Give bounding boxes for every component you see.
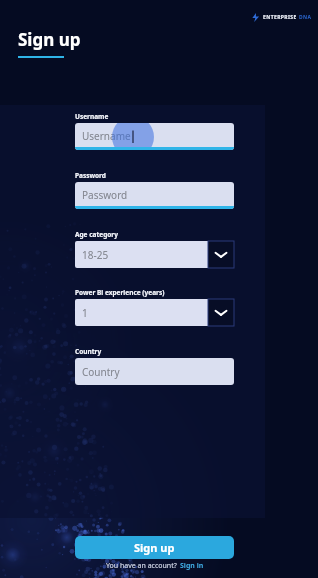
staticText: Sign up (134, 540, 175, 555)
button[interactable]: Sign up (75, 536, 234, 559)
staticText: You have an account? (106, 561, 177, 571)
staticText: Age category (75, 230, 118, 239)
staticText: Power Bi experience (years) (75, 288, 165, 297)
staticText: Sign up (18, 28, 81, 51)
staticText: DNA (299, 14, 312, 21)
staticText: 1 (82, 306, 88, 320)
button[interactable]: 1 (75, 299, 208, 326)
button[interactable]: Open dropdown (208, 241, 234, 268)
button[interactable]: Sign in (180, 561, 204, 571)
staticText: Sign in (180, 561, 204, 571)
button[interactable]: Country (75, 358, 234, 385)
staticText: Country (75, 347, 102, 356)
button[interactable]: Enterprise DNA logo (251, 13, 312, 22)
staticText: 18-25 (82, 248, 109, 262)
staticText: Country (82, 365, 120, 379)
button[interactable]: Open dropdown (208, 299, 234, 326)
button[interactable]: Password (75, 182, 234, 209)
button[interactable]: 18-25 (75, 241, 208, 268)
button[interactable]: Username (75, 123, 234, 150)
staticText: Password (82, 188, 128, 202)
staticText: Username (75, 112, 109, 121)
staticText: Password (75, 171, 106, 180)
staticText: ENTERPRISE (263, 14, 297, 21)
staticText: Username (82, 129, 131, 143)
